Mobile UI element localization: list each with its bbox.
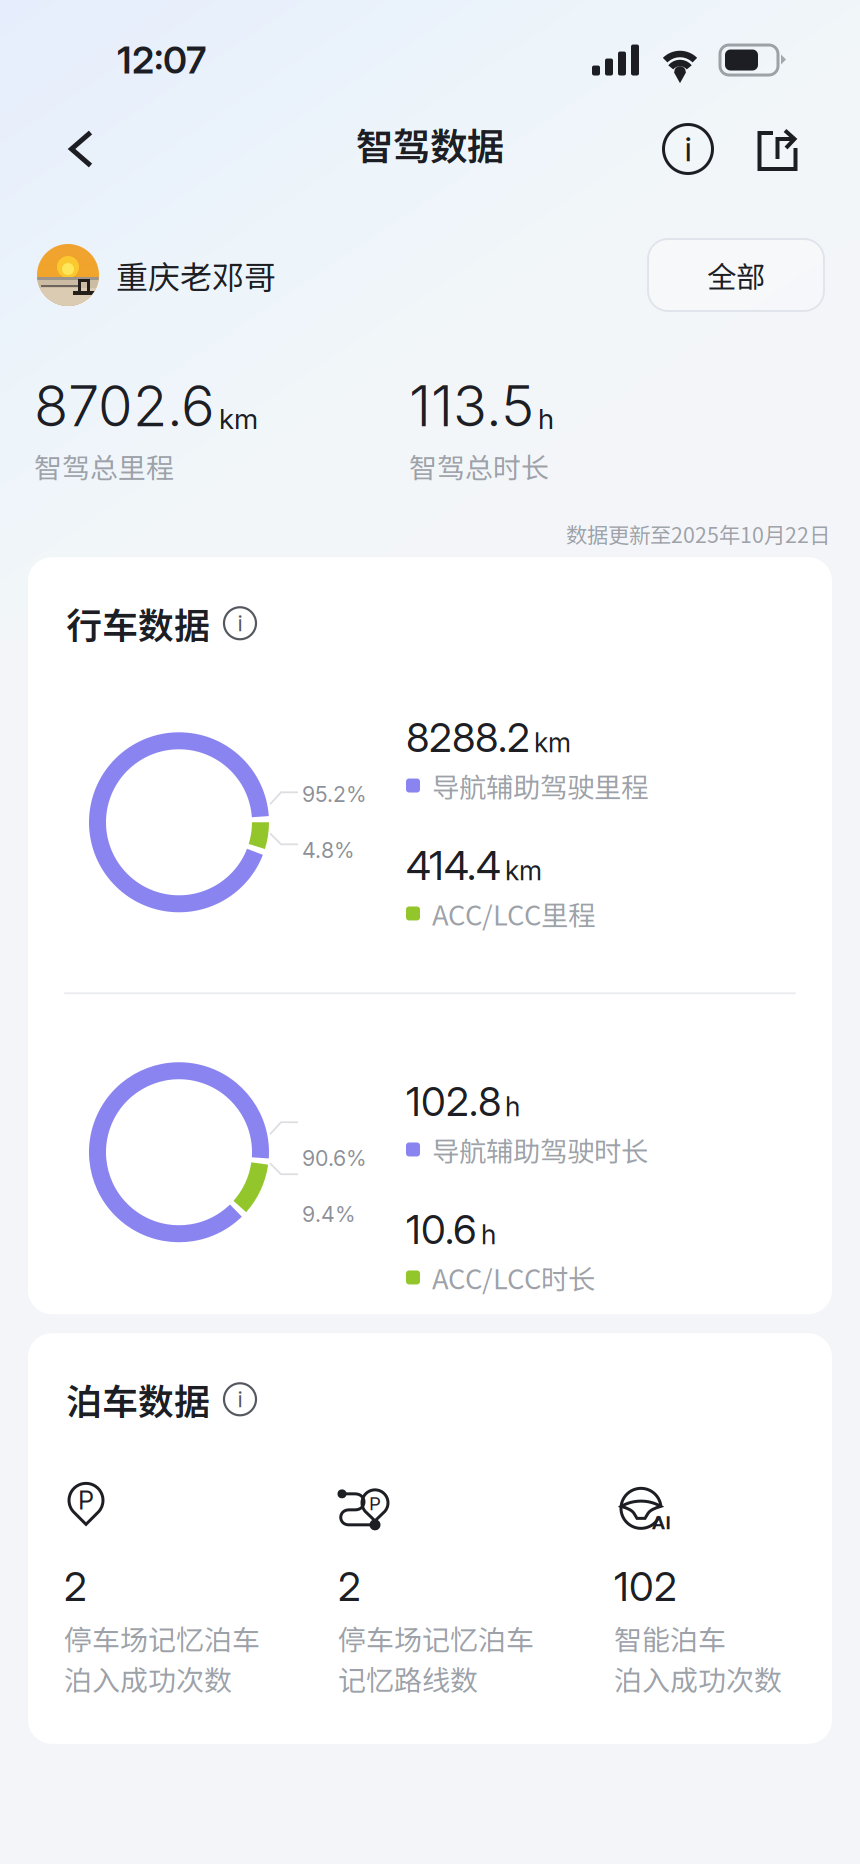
staticText: 95.2% — [302, 781, 367, 807]
button[interactable]: Info — [642, 113, 734, 185]
staticText: 记忆路线数 — [338, 1658, 478, 1699]
staticText: 泊入成功次数 — [64, 1658, 232, 1699]
staticText: 智驾数据 — [356, 117, 504, 171]
staticText: 重庆老邓哥 — [116, 252, 276, 298]
staticText: 停车场记忆泊车 — [338, 1618, 534, 1658]
staticText: i — [684, 128, 691, 169]
staticText: km — [219, 402, 258, 436]
staticText: 4.8% — [302, 837, 355, 863]
staticText: 停车场记忆泊车 — [64, 1618, 260, 1658]
staticText: 智驾总里程 — [34, 446, 174, 486]
staticText: 10.6 — [406, 1205, 477, 1254]
button[interactable]: 全部 — [648, 239, 824, 311]
staticText: h — [505, 1090, 520, 1123]
staticText: 102.8 — [406, 1077, 501, 1126]
staticText: 全部 — [707, 254, 765, 296]
staticText: 8702.6 — [34, 372, 215, 440]
staticText: i — [237, 1386, 242, 1413]
staticText: 智驾总时长 — [409, 446, 549, 486]
staticText: 泊车数据 — [66, 1373, 210, 1425]
staticText: ACC/LCC里程 — [432, 894, 595, 933]
staticText: 智能泊车 — [614, 1618, 726, 1658]
staticText: h — [481, 1218, 496, 1251]
staticText: 414.4 — [406, 841, 501, 890]
button[interactable]: Back — [38, 113, 124, 185]
staticText: 导航辅助驾驶里程 — [432, 766, 648, 805]
staticText: 导航辅助驾驶时长 — [432, 1130, 648, 1169]
staticText: 8288.2 — [406, 713, 530, 762]
staticText: 行车数据 — [66, 597, 210, 649]
staticText: P — [369, 1492, 381, 1515]
staticText: i — [237, 610, 242, 637]
button[interactable]: Share — [734, 109, 822, 189]
staticText: ACC/LCC时长 — [432, 1258, 595, 1297]
staticText: 数据更新至2025年10月22日 — [566, 518, 830, 549]
staticText: 泊入成功次数 — [614, 1658, 782, 1699]
staticText: 12:07 — [117, 37, 206, 83]
staticText: 90.6% — [302, 1145, 367, 1171]
staticText: 9.4% — [302, 1201, 356, 1227]
staticText: P — [78, 1485, 94, 1516]
staticText: 102 — [614, 1562, 677, 1611]
staticText: 113.5 — [409, 372, 534, 440]
staticText: AI — [651, 1511, 670, 1534]
staticText: h — [538, 402, 554, 436]
staticText: 2 — [338, 1562, 361, 1611]
staticText: km — [534, 726, 571, 759]
staticText: 2 — [64, 1562, 87, 1611]
staticText: km — [505, 854, 542, 887]
